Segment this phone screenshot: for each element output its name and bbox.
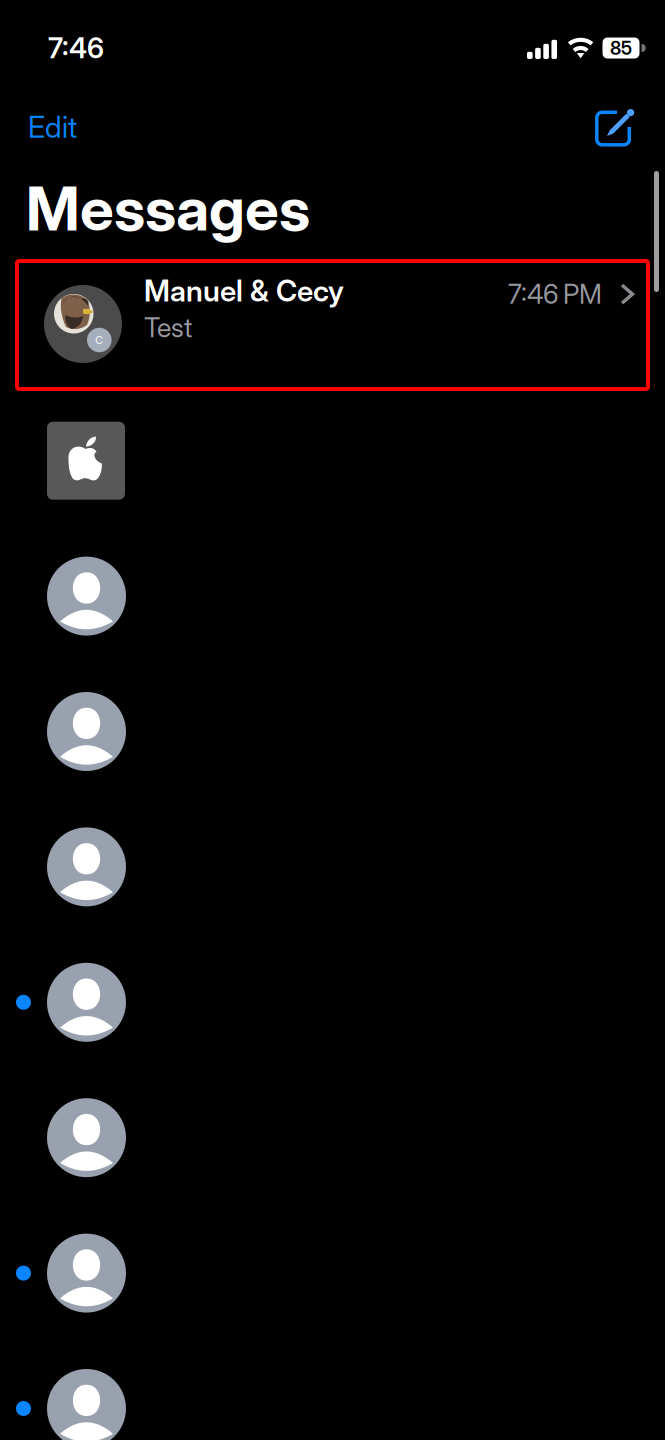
button[interactable] [0,664,665,799]
staticText: 7:46 PM [508,278,602,310]
staticText: Manuel & Cecy [144,273,344,308]
button[interactable] [0,393,665,528]
button[interactable] [0,799,665,935]
staticText: Edit [28,109,77,145]
button[interactable]: C [0,262,665,393]
staticText: 85 [610,37,632,59]
staticText: C [95,333,103,346]
button[interactable] [0,1205,665,1341]
staticText: 7:46 [48,31,104,65]
staticText: Messages [26,172,310,245]
button[interactable] [0,1341,665,1440]
button[interactable]: Edit [26,101,79,153]
staticText: Test [144,311,192,344]
button[interactable] [0,528,665,664]
button[interactable] [0,1070,665,1205]
button[interactable] [0,935,665,1070]
button[interactable]: Compose [595,106,635,148]
